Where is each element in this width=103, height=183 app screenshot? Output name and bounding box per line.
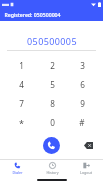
button[interactable]: # <box>67 113 97 132</box>
staticText: 050500005 <box>27 35 77 47</box>
button[interactable]: 2 <box>37 55 67 75</box>
button[interactable]: Backspace <box>81 138 95 152</box>
staticText: Dialer <box>12 170 23 175</box>
button[interactable]: Call <box>43 137 60 154</box>
staticText: History <box>46 170 59 175</box>
staticText: 6 <box>80 79 85 90</box>
button[interactable]: Registered: 050500004 <box>0 8 103 21</box>
staticText: 3 <box>80 60 85 71</box>
staticText: Registered: 050500004 <box>4 11 61 18</box>
staticText: 5 <box>50 79 55 90</box>
staticText: 4 <box>19 79 24 90</box>
staticText: 1 <box>19 60 24 71</box>
button[interactable]: 6 <box>67 75 97 94</box>
button[interactable]: 8 <box>37 94 67 113</box>
button[interactable]: 4 <box>6 75 37 94</box>
button[interactable]: History <box>35 160 69 176</box>
staticText: * <box>19 117 24 129</box>
button[interactable]: 3 <box>67 55 97 75</box>
staticText: # <box>79 117 85 128</box>
button[interactable]: 7 <box>6 94 37 113</box>
staticText: 8 <box>50 98 55 109</box>
button[interactable]: 0 <box>37 113 67 132</box>
staticText: 2 <box>50 60 55 71</box>
button[interactable]: 1 <box>6 55 37 75</box>
staticText: Logout <box>80 170 92 175</box>
staticText: 7 <box>19 98 24 109</box>
button[interactable]: 5 <box>37 75 67 94</box>
button[interactable]: Dialer <box>0 160 35 176</box>
staticText: 0 <box>50 117 55 128</box>
staticText: 9 <box>80 98 85 109</box>
button[interactable]: * <box>6 113 37 132</box>
button[interactable]: Logout <box>69 160 103 176</box>
button[interactable]: 9 <box>67 94 97 113</box>
